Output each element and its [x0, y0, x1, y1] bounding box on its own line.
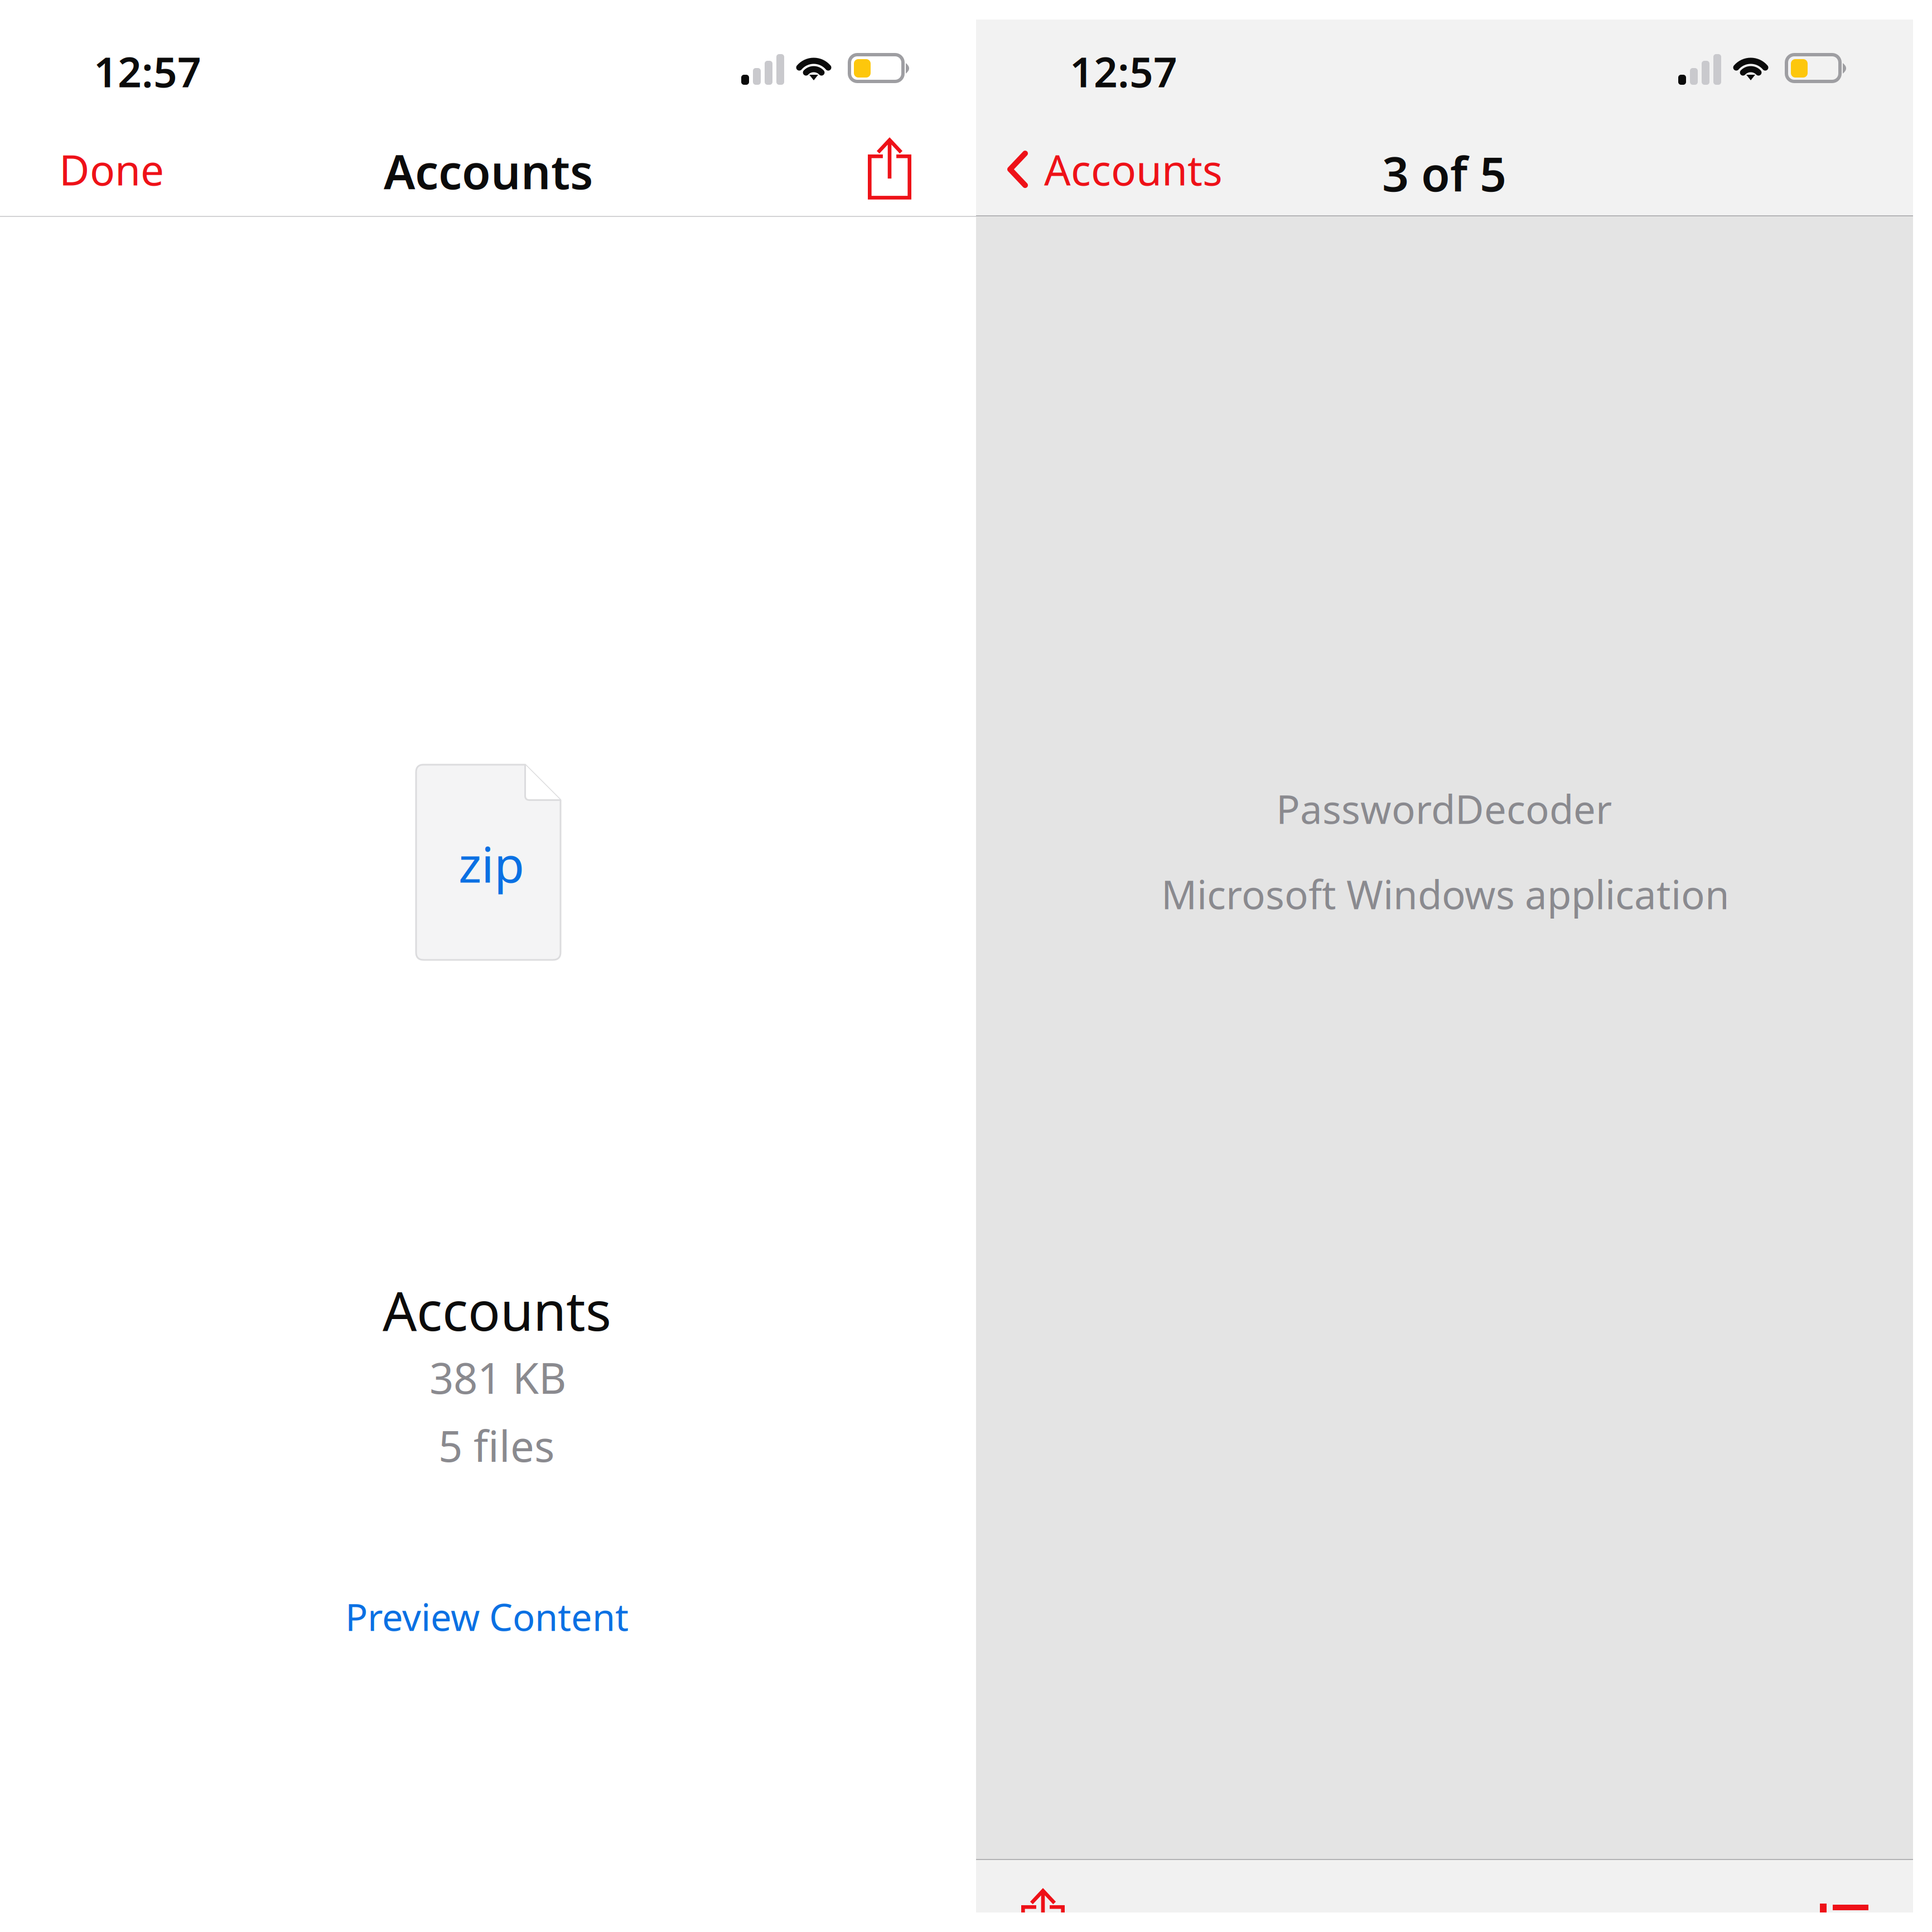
button[interactable]: Done [46, 122, 177, 217]
staticText: Done [59, 142, 164, 197]
button[interactable]: Preview Content [326, 1576, 648, 1657]
staticText: 12:57 [1070, 44, 1177, 99]
staticText: zip [458, 831, 524, 896]
staticText: 12:57 [94, 44, 201, 99]
button[interactable]: View as list [1803, 1900, 1886, 1916]
staticText: 5 files [438, 1417, 554, 1473]
staticText: Preview Content [345, 1592, 629, 1641]
staticText: PasswordDecoder [1276, 783, 1612, 835]
staticText: 3 of 5 [1382, 142, 1506, 204]
staticText: Microsoft Windows application [1161, 868, 1730, 920]
staticText: Accounts [1044, 142, 1223, 197]
button[interactable]: Share [1001, 1888, 1085, 1932]
staticText: Accounts [383, 1274, 611, 1346]
button[interactable]: Share [849, 125, 930, 212]
staticText: Accounts [384, 140, 593, 202]
button[interactable]: Accounts [994, 122, 1238, 217]
staticText: 381 KB [429, 1349, 566, 1405]
